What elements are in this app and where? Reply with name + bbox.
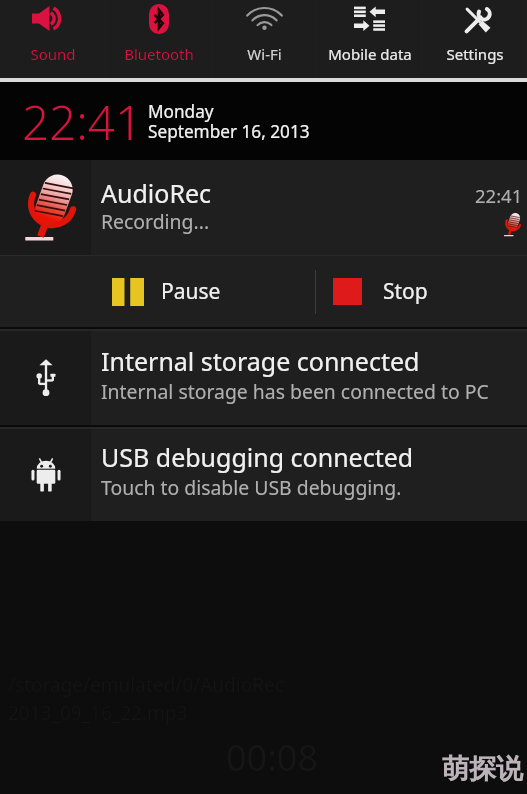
staticText: Internal storage has been connected to P… bbox=[101, 378, 489, 404]
button[interactable]: AudioRec bbox=[0, 160, 527, 255]
staticText: 22:41 bbox=[475, 183, 523, 208]
staticText: Pause bbox=[161, 277, 221, 306]
staticText: USB debugging connected bbox=[101, 440, 414, 474]
button[interactable]: USB debugging connected bbox=[0, 429, 527, 521]
staticText: 萌探说 bbox=[442, 752, 523, 786]
staticText: Stop bbox=[383, 277, 428, 306]
staticText: 22:41 bbox=[22, 89, 143, 154]
staticText: Recording... bbox=[101, 208, 210, 234]
button[interactable]: Settings bbox=[422, 0, 527, 78]
button[interactable]: Mobile data bbox=[317, 0, 422, 78]
button[interactable]: Bluetooth bbox=[106, 0, 212, 78]
staticText: Bluetooth bbox=[124, 44, 194, 64]
staticText: Mobile data bbox=[328, 44, 412, 64]
staticText: Internal storage connected bbox=[101, 344, 420, 378]
button[interactable]: Sound bbox=[0, 0, 106, 78]
staticText: Touch to disable USB debugging. bbox=[101, 474, 402, 500]
button[interactable]: Pause bbox=[0, 256, 315, 327]
staticText: Wi-Fi bbox=[247, 44, 282, 64]
button[interactable]: Stop bbox=[316, 256, 527, 327]
button[interactable]: Wi-Fi bbox=[212, 0, 317, 78]
button[interactable]: Internal storage connected bbox=[0, 331, 527, 425]
staticText: Sound bbox=[30, 44, 76, 64]
staticText: September 16, 2013 bbox=[148, 120, 310, 143]
staticText: AudioRec bbox=[101, 176, 212, 210]
staticText: Monday bbox=[148, 100, 214, 123]
staticText: Settings bbox=[446, 44, 504, 64]
